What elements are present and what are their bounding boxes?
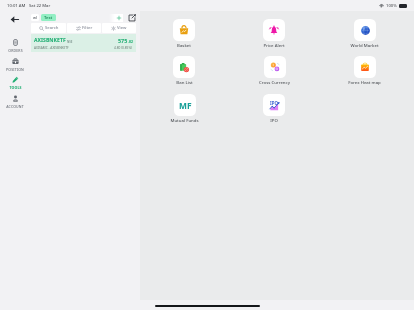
button[interactable]: Cross Currency [259,56,290,85]
staticText: View [117,25,127,31]
staticText: POSITION [6,67,24,72]
button[interactable]: World Market [350,19,379,48]
staticText: Test [44,15,53,21]
staticText: Forex Heat map [348,79,381,85]
button[interactable]: Ban List [173,56,195,85]
button[interactable]: ORDERS [1,39,29,53]
staticText: NSE [67,40,73,44]
staticText: Sat 22 Mar [29,3,51,9]
staticText: Search [45,25,59,31]
staticText: .82 [128,39,133,44]
button[interactable]: wl [31,14,39,21]
staticText: IPO [270,100,278,106]
staticText: 10:01 AM [7,3,26,9]
staticText: TOOLS [9,85,22,90]
button[interactable]: MF [170,94,199,123]
staticText: ACCOUNT [6,104,24,109]
button[interactable]: Add watchlist [115,14,123,22]
staticText: IPO [270,117,278,123]
staticText: AXISAMC - AXISBNKETF [34,46,69,50]
button[interactable]: Forex Heat map [348,56,381,85]
staticText: World Market [350,42,379,48]
button[interactable]: TOOLS [1,76,29,90]
staticText: Price Alert [263,42,285,48]
staticText: Cross Currency [259,79,290,85]
button[interactable]: View [102,23,136,33]
staticText: Ban List [176,79,193,85]
button[interactable]: Search [31,23,66,33]
button[interactable]: AXISBNKETF [31,34,136,52]
staticText: Mutual Funds [170,117,199,123]
button[interactable]: Back [7,12,21,26]
staticText: ORDERS [8,48,23,53]
staticText: MF [179,100,192,111]
staticText: Filter [82,25,93,31]
button[interactable]: Basket [173,19,195,48]
staticText: 100% [386,3,397,9]
button[interactable]: Test [41,14,56,21]
button[interactable]: POSITION [1,58,29,72]
button[interactable]: ACCOUNT [1,95,29,109]
button[interactable]: Filter [67,23,101,33]
staticText: Basket [177,42,191,48]
staticText: 575 [118,37,128,44]
staticText: AXISBNKETF [34,37,66,44]
staticText: 4.80 (0.85%) [114,46,133,50]
staticText: wl [33,15,37,20]
button[interactable]: Edit watchlist [128,14,136,22]
button[interactable]: IPO [263,94,285,123]
button[interactable]: Price Alert [263,19,285,48]
